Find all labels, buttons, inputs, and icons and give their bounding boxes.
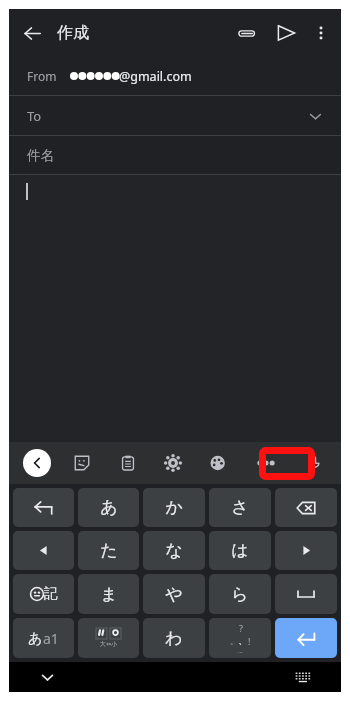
button[interactable]: Expand recipients bbox=[303, 104, 327, 128]
staticText: … bbox=[238, 647, 243, 655]
button[interactable]: Settings bbox=[158, 448, 188, 478]
staticText: ? bbox=[239, 622, 243, 634]
staticText: な bbox=[165, 540, 183, 561]
staticText: To bbox=[27, 107, 42, 125]
staticText: た bbox=[100, 540, 118, 561]
staticText: From bbox=[27, 68, 57, 84]
button[interactable]: Undo bbox=[13, 488, 74, 527]
staticText: や bbox=[165, 584, 183, 605]
button[interactable]: か bbox=[143, 488, 205, 527]
button[interactable]: From bbox=[9, 57, 341, 95]
staticText: 件名 bbox=[27, 147, 54, 164]
button[interactable]: Switch input mode bbox=[13, 618, 74, 658]
staticText: 、 bbox=[238, 634, 248, 647]
button[interactable]: Move cursor right bbox=[275, 531, 337, 570]
button[interactable]: Backspace bbox=[275, 488, 337, 527]
button[interactable]: な bbox=[143, 531, 205, 570]
button[interactable]: Back bbox=[15, 16, 49, 50]
staticText: 作成 bbox=[57, 23, 89, 43]
button[interactable] bbox=[9, 175, 341, 442]
button[interactable]: Enter bbox=[275, 618, 337, 658]
button[interactable]: さ bbox=[209, 488, 271, 527]
button[interactable]: Space bbox=[275, 574, 337, 614]
staticText: あ bbox=[100, 497, 118, 518]
staticText: 。 bbox=[230, 636, 238, 646]
button[interactable]: あ bbox=[78, 488, 139, 527]
button[interactable]: To bbox=[9, 96, 341, 135]
button[interactable]: Voice input bbox=[299, 448, 329, 478]
button[interactable]: Switch keyboard bbox=[290, 664, 316, 690]
button[interactable]: More options bbox=[305, 17, 337, 49]
staticText: a1 bbox=[43, 629, 59, 648]
staticText: @gmail.com bbox=[119, 68, 192, 85]
staticText: ま bbox=[100, 584, 118, 605]
button[interactable]: Collapse toolbar bbox=[23, 449, 51, 477]
button[interactable]: More keyboard options bbox=[248, 448, 284, 478]
button[interactable]: Dakuten and small bbox=[78, 618, 139, 658]
button[interactable]: Hide keyboard bbox=[34, 664, 60, 690]
button[interactable]: Emoji and symbols bbox=[13, 574, 74, 614]
staticText: さ bbox=[231, 497, 249, 518]
staticText: は bbox=[231, 540, 249, 561]
button[interactable]: Move cursor left bbox=[13, 531, 74, 570]
button[interactable]: Stickers bbox=[67, 448, 97, 478]
button[interactable]: ま bbox=[78, 574, 139, 614]
staticText: か bbox=[165, 497, 183, 518]
staticText: 大⇔小 bbox=[100, 640, 118, 648]
button[interactable]: は bbox=[209, 531, 271, 570]
button[interactable]: Themes bbox=[203, 448, 233, 478]
button[interactable]: や bbox=[143, 574, 205, 614]
button[interactable]: わ bbox=[143, 618, 205, 658]
button[interactable]: Punctuation bbox=[209, 618, 271, 658]
staticText: わ bbox=[165, 628, 183, 649]
button[interactable]: ら bbox=[209, 574, 271, 614]
button[interactable]: Attach file bbox=[229, 16, 263, 50]
button[interactable]: Send bbox=[269, 16, 303, 50]
staticText: 記 bbox=[44, 585, 58, 603]
button[interactable]: た bbox=[78, 531, 139, 570]
staticText: あ bbox=[28, 630, 43, 648]
button[interactable]: 件名 bbox=[9, 136, 341, 174]
button[interactable]: Clipboard bbox=[113, 448, 143, 478]
staticText: ! bbox=[248, 635, 251, 647]
staticText: ら bbox=[231, 584, 249, 605]
